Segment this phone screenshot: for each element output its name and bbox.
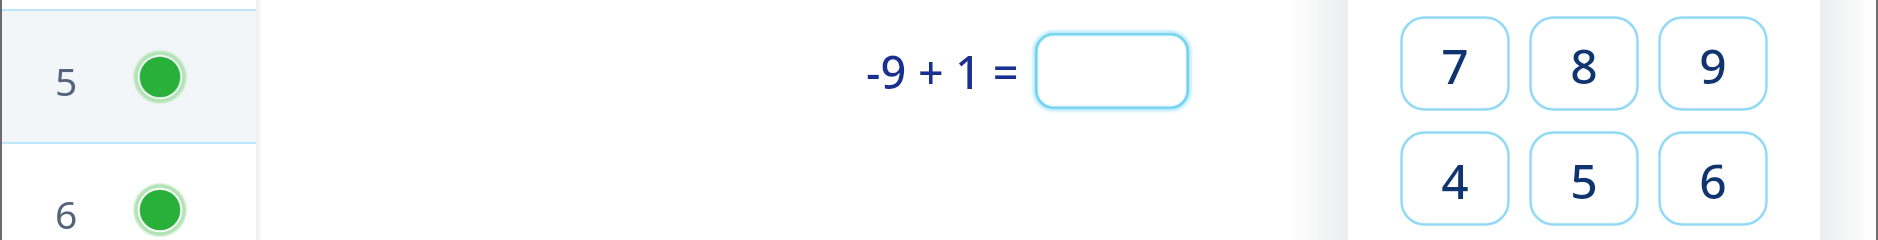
button[interactable]: 7 xyxy=(1400,16,1510,111)
staticText: 9 xyxy=(1699,33,1727,98)
button[interactable]: 4 xyxy=(1400,131,1510,226)
button[interactable]: Answer field xyxy=(1030,28,1194,114)
staticText: 5 xyxy=(55,54,78,107)
staticText: 7 xyxy=(1441,33,1469,98)
staticText: 6 xyxy=(1699,148,1727,213)
staticText: 6 xyxy=(55,187,78,240)
staticText: 8 xyxy=(1570,33,1598,98)
staticText: -9 + 1 = xyxy=(866,41,1019,102)
staticText: 4 xyxy=(1441,148,1469,213)
button[interactable]: 5 xyxy=(0,11,256,142)
staticText: 5 xyxy=(1570,148,1598,213)
button[interactable]: 8 xyxy=(1529,16,1639,111)
button[interactable]: 6 xyxy=(0,144,256,240)
button[interactable]: 6 xyxy=(1658,131,1768,226)
button[interactable]: 9 xyxy=(1658,16,1768,111)
button[interactable]: 5 xyxy=(1529,131,1639,226)
